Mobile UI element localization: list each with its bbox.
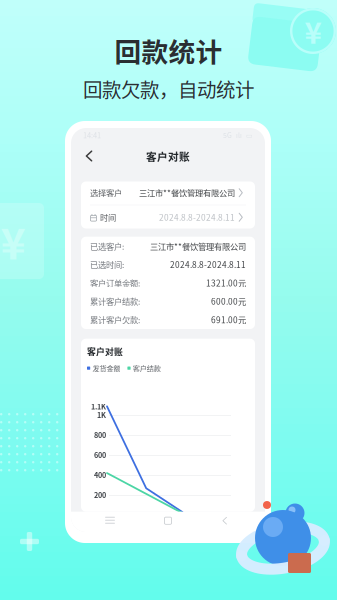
staticText: 2024.8.8-2024.8.11 [159,211,235,223]
staticText: 客户结款 [133,363,161,373]
staticText: 600 [94,450,106,460]
staticText: 已选时间: [90,258,124,270]
staticText: 1.1K [91,401,106,412]
staticText: - [103,510,106,520]
staticText: 1K [97,410,106,420]
staticText: 回款统计 [114,31,222,70]
staticText: ¥ [304,10,321,52]
staticText: 800 [94,430,106,440]
staticText: 三江市**餐饮管理有限公司 [150,240,246,252]
staticText: 14:41 [83,130,101,140]
staticText: 客户对账 [87,345,123,358]
button[interactable]: Menu [94,514,128,528]
staticText: 客户对账 [146,148,190,164]
staticText: 选择客户 [90,187,122,199]
staticText: 2024.8.8-2024.8.11 [170,258,246,270]
staticText: 已选客户: [90,240,124,252]
staticText: 累计客户结款: [90,295,140,307]
staticText: 200 [94,490,106,500]
staticText: 三江市**餐饮管理有限公司 [139,187,235,199]
button[interactable]: Home [151,514,185,528]
button[interactable]: 时间 [81,205,255,229]
staticText: 发货金额 [92,363,120,373]
staticText: 时间 [100,211,116,223]
staticText: 客户订单金额: [90,277,140,289]
staticText: 600.00元 [211,295,246,307]
button[interactable]: Back [208,514,242,528]
staticText: 回款欠款，自动统计 [83,75,254,103]
staticText: 400 [94,470,106,480]
staticText: ¥ [0,210,25,272]
staticText: 1321.00元 [206,277,246,289]
staticText: 691.00元 [211,314,246,326]
staticText: 5G ılı ▭ [223,130,253,140]
button[interactable]: 选择客户 [81,181,255,205]
button[interactable]: Back [79,145,99,167]
staticText: 累计客户欠款: [90,314,140,326]
